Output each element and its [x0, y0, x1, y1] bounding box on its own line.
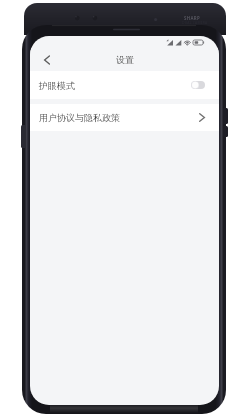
- button[interactable]: 护眼模式: [30, 71, 219, 99]
- staticText: 设置: [116, 54, 134, 65]
- button[interactable]: Back: [38, 51, 56, 69]
- staticText: SHARP: [184, 15, 201, 21]
- staticText: 用户协议与隐私政策: [39, 112, 120, 123]
- staticText: 护眼模式: [39, 80, 75, 91]
- button[interactable]: 用户协议与隐私政策: [30, 104, 219, 131]
- button[interactable]: Toggle eye protection mode: [191, 81, 205, 89]
